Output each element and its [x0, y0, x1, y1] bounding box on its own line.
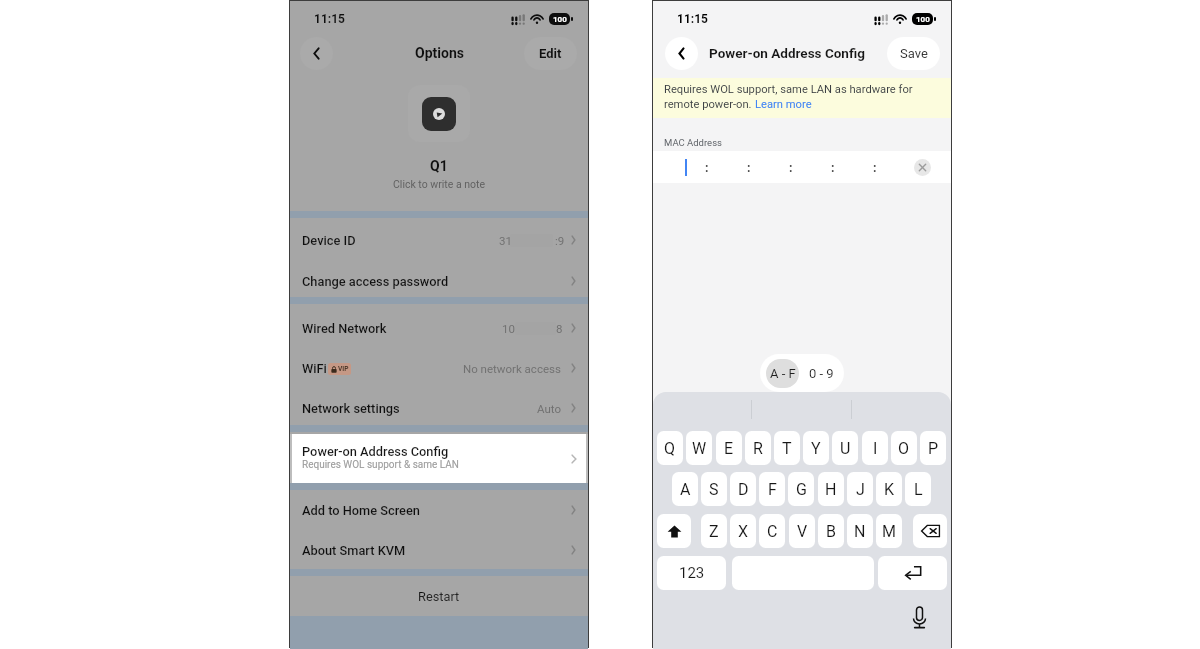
- button[interactable]: Enter: [878, 556, 947, 590]
- staticText: About Smart KVM: [302, 543, 406, 558]
- button[interactable]: Q: [657, 431, 683, 465]
- button[interactable]: I: [862, 431, 888, 465]
- button[interactable]: Clear: [914, 159, 931, 176]
- staticText: VIP: [338, 365, 349, 373]
- staticText: remote power-on.: [664, 98, 755, 111]
- staticText: Restart: [418, 589, 460, 604]
- staticText: :: [747, 160, 751, 175]
- staticText: Options: [415, 45, 464, 61]
- staticText: :: [705, 160, 709, 175]
- staticText: D: [738, 480, 749, 499]
- button[interactable]: E: [716, 431, 742, 465]
- staticText: Edit: [539, 46, 562, 61]
- staticText: 10.: [502, 322, 518, 335]
- staticText: P: [928, 439, 939, 458]
- button[interactable]: Device ID: [290, 220, 588, 260]
- staticText: Z: [709, 522, 719, 541]
- staticText: F: [768, 480, 777, 499]
- staticText: Power-on Address Config: [709, 45, 865, 61]
- button[interactable]: P: [920, 431, 946, 465]
- staticText: Q1: [430, 158, 448, 174]
- button[interactable]: J: [847, 472, 873, 506]
- staticText: W: [692, 439, 707, 458]
- button[interactable]: Power-on Address Config: [292, 434, 586, 483]
- staticText: N: [854, 522, 866, 541]
- button[interactable]: R: [745, 431, 771, 465]
- button[interactable]: N: [847, 514, 873, 548]
- staticText: A - F: [770, 366, 796, 381]
- staticText: H: [825, 480, 837, 499]
- staticText: O: [898, 439, 910, 458]
- button[interactable]: Shift: [657, 514, 691, 548]
- staticText: No network access: [463, 362, 561, 375]
- staticText: G: [796, 480, 807, 499]
- staticText: K: [884, 480, 895, 499]
- staticText: :: [873, 160, 877, 175]
- staticText: 11:15: [677, 12, 708, 26]
- staticText: WiFi: [302, 361, 327, 376]
- button[interactable]: Wired Network: [290, 308, 588, 348]
- button[interactable]: W: [686, 431, 712, 465]
- staticText: Learn more: [755, 98, 812, 111]
- button[interactable]: Network settings: [290, 388, 588, 428]
- button[interactable]: Edit: [524, 37, 577, 70]
- button[interactable]: G: [788, 472, 814, 506]
- staticText: Click to write a note: [393, 178, 486, 190]
- button[interactable]: 123: [657, 556, 726, 590]
- button[interactable]: U: [832, 431, 858, 465]
- button[interactable]: Backspace: [913, 514, 947, 548]
- staticText: M: [882, 522, 896, 541]
- staticText: 8: [556, 322, 563, 335]
- staticText: R: [753, 439, 763, 458]
- button[interactable]: Restart: [290, 576, 588, 617]
- staticText: B: [826, 522, 836, 541]
- button[interactable]: Change access password: [290, 261, 588, 301]
- staticText: 31: [499, 234, 512, 247]
- staticText: Requires WOL support & same LAN: [302, 459, 459, 471]
- button[interactable]: Back: [300, 37, 333, 70]
- staticText: MAC Address: [664, 137, 722, 148]
- button[interactable]: 0 - 9: [805, 359, 838, 388]
- staticText: :: [831, 160, 835, 175]
- button[interactable]: M: [876, 514, 902, 548]
- button[interactable]: A - F: [766, 359, 799, 388]
- button[interactable]: WiFi: [290, 348, 588, 388]
- staticText: Device ID: [302, 233, 356, 248]
- button[interactable]: S: [701, 472, 727, 506]
- staticText: Network settings: [302, 401, 400, 416]
- staticText: Y: [811, 439, 821, 458]
- button[interactable]: Back: [665, 37, 698, 70]
- button[interactable]: C: [759, 514, 785, 548]
- button[interactable]: O: [891, 431, 917, 465]
- button[interactable]: F: [759, 472, 785, 506]
- button[interactable]: B: [818, 514, 844, 548]
- button[interactable]: Y: [803, 431, 829, 465]
- staticText: Wired Network: [302, 321, 387, 336]
- button[interactable]: X: [730, 514, 756, 548]
- button[interactable]: Voice input: [904, 603, 934, 633]
- button[interactable]: Z: [701, 514, 727, 548]
- button[interactable]: K: [876, 472, 902, 506]
- staticText: Q: [664, 439, 676, 458]
- staticText: :9: [555, 234, 565, 247]
- staticText: S: [709, 480, 719, 499]
- button[interactable]: H: [818, 472, 844, 506]
- button[interactable]: L: [905, 472, 931, 506]
- staticText: Requires WOL support, same LAN as hardwa…: [664, 83, 913, 96]
- staticText: T: [782, 439, 792, 458]
- staticText: Add to Home Screen: [302, 503, 420, 518]
- staticText: 11:15: [314, 12, 345, 26]
- button[interactable]: A: [672, 472, 698, 506]
- staticText: J: [856, 480, 865, 499]
- button[interactable]: V: [789, 514, 815, 548]
- button[interactable]: D: [730, 472, 756, 506]
- staticText: Save: [900, 46, 928, 61]
- button[interactable]: Device image: [422, 97, 456, 131]
- staticText: Auto: [537, 402, 561, 415]
- button[interactable]: Save: [887, 37, 940, 70]
- button[interactable]: About Smart KVM: [290, 530, 588, 570]
- staticText: V: [797, 522, 808, 541]
- button[interactable]: Add to Home Screen: [290, 490, 588, 530]
- button[interactable]: T: [774, 431, 800, 465]
